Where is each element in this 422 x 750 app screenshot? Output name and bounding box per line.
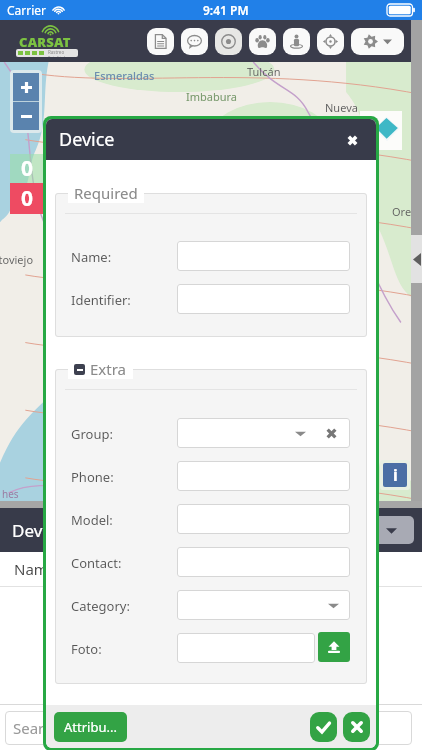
button[interactable]: [177, 590, 350, 620]
staticText: Device: [12, 519, 65, 542]
staticText: Contact:: [71, 554, 122, 572]
button[interactable]: Locate: [317, 28, 344, 55]
button[interactable]: Street view: [283, 28, 310, 55]
button[interactable]: 0: [10, 154, 44, 183]
button[interactable]: [177, 461, 350, 491]
staticText: Carrier: [7, 2, 47, 18]
staticText: Identifier:: [71, 291, 131, 309]
staticText: Required: [74, 183, 138, 203]
staticText: Tulcán: [247, 64, 281, 79]
button[interactable]: Info: [383, 463, 407, 487]
button[interactable]: Clear: [177, 418, 350, 448]
button[interactable]: Close: [342, 130, 362, 150]
staticText: Group:: [71, 425, 113, 443]
button[interactable]: Clear: [320, 422, 342, 444]
button[interactable]: Save: [310, 712, 337, 742]
button[interactable]: Record: [215, 28, 242, 55]
staticText: Nueva: [325, 100, 358, 115]
staticText: Name: [14, 559, 57, 579]
staticText: Rastreo Satelital: [48, 49, 78, 57]
staticText: i: [393, 464, 398, 486]
button[interactable]: Panel menu: [368, 516, 414, 544]
staticText: Imbabura: [186, 89, 238, 104]
button[interactable]: Collapse panel: [411, 62, 422, 563]
staticText: hes: [2, 487, 19, 501]
staticText: Phone:: [71, 468, 114, 486]
staticText: Foto:: [71, 640, 102, 658]
staticText: rtoviejo: [0, 252, 34, 267]
button[interactable]: [177, 633, 315, 663]
button[interactable]: Search: [5, 711, 412, 745]
button[interactable]: Pets: [249, 28, 276, 55]
button[interactable]: [177, 547, 350, 577]
button[interactable]: 0: [10, 183, 44, 214]
button[interactable]: Settings menu: [351, 28, 404, 55]
button[interactable]: Cancel: [343, 712, 370, 742]
button[interactable]: [177, 241, 350, 271]
button[interactable]: [177, 504, 350, 534]
button[interactable]: Messages: [181, 28, 208, 55]
button[interactable]: Zoom out: [13, 102, 39, 130]
staticText: Category:: [71, 597, 130, 615]
staticText: Extra: [90, 359, 127, 379]
button[interactable]: Documents: [147, 28, 174, 55]
staticText: Orello: [392, 204, 422, 219]
staticText: Name:: [71, 248, 112, 266]
staticText: 9:41 PM: [203, 2, 249, 18]
staticText: Model:: [71, 511, 113, 529]
staticText: Search: [13, 718, 61, 738]
button[interactable]: Zoom in: [13, 73, 39, 101]
button[interactable]: [177, 284, 350, 314]
button[interactable]: Attribu...: [54, 712, 127, 742]
button[interactable]: Collapse: [74, 364, 85, 375]
staticText: 0: [21, 184, 34, 213]
staticText: Esmeraldas: [94, 68, 155, 83]
staticText: Attribu...: [64, 718, 117, 736]
staticText: Device: [59, 127, 115, 152]
staticText: CARSAT: [19, 33, 71, 51]
button[interactable]: Upload photo: [318, 632, 350, 662]
staticText: 0: [21, 154, 34, 183]
